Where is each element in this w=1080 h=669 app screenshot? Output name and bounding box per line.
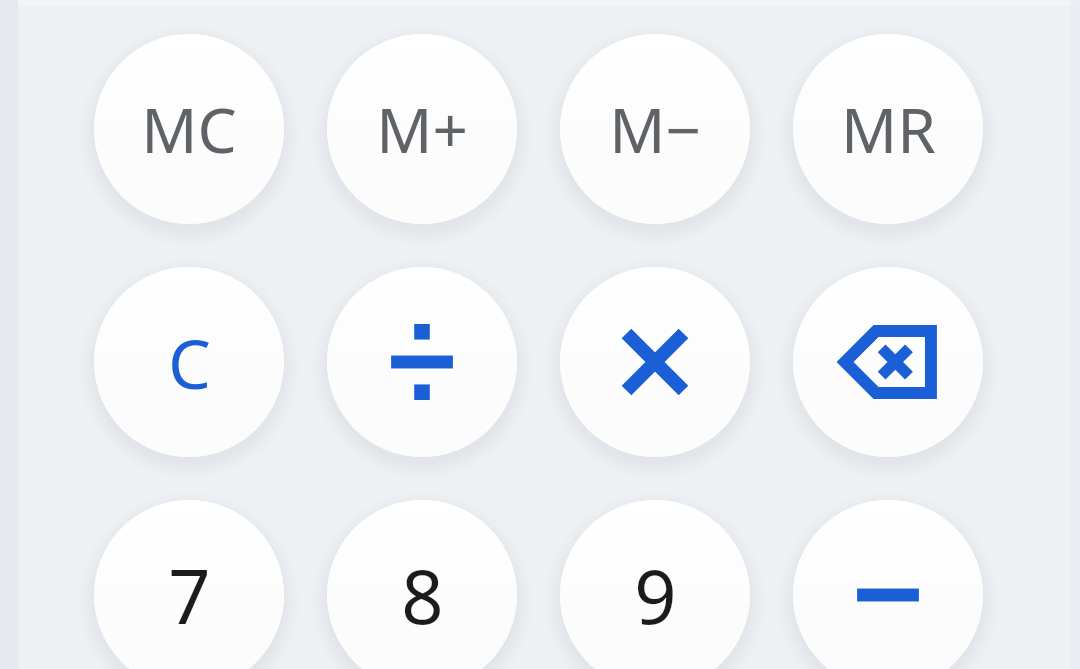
staticText: M+ xyxy=(376,87,468,171)
button[interactable]: Seven xyxy=(78,484,300,669)
button[interactable]: Memory recall xyxy=(777,18,999,240)
button[interactable]: Memory clear xyxy=(78,18,300,240)
button[interactable]: Nine xyxy=(544,484,766,669)
staticText: MC xyxy=(141,87,237,171)
staticText: MR xyxy=(841,87,936,171)
staticText: 7 xyxy=(168,545,211,646)
button[interactable]: Eight xyxy=(311,484,533,669)
staticText: M− xyxy=(609,87,701,171)
staticText: 9 xyxy=(634,545,677,646)
button[interactable]: Multiply xyxy=(544,251,766,473)
button[interactable]: Memory subtract xyxy=(544,18,766,240)
staticText: 8 xyxy=(401,545,444,646)
button[interactable]: Memory add xyxy=(311,18,533,240)
button[interactable]: Subtract xyxy=(777,484,999,669)
button[interactable]: Divide xyxy=(311,251,533,473)
staticText: C xyxy=(168,316,211,409)
button[interactable]: Clear xyxy=(78,251,300,473)
button[interactable]: Backspace xyxy=(777,251,999,473)
